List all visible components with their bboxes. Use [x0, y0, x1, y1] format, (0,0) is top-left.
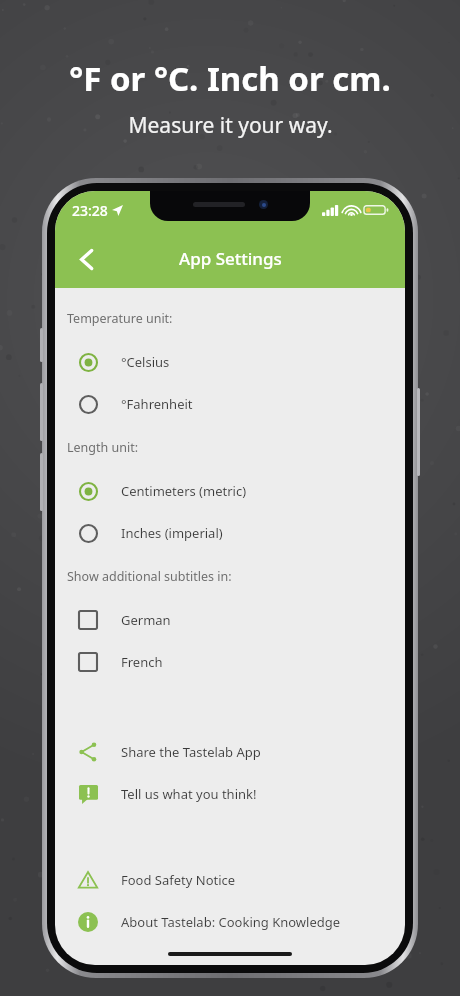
button[interactable]: Inches (imperial) — [55, 512, 405, 554]
button[interactable]: French — [55, 641, 405, 683]
button[interactable]: About Tastelab: Cooking Knowledge — [55, 901, 405, 943]
staticText: °Celsius — [121, 353, 170, 371]
staticText: Tell us what you think! — [121, 785, 257, 803]
staticText: °F or °C. Inch or cm. — [69, 56, 391, 101]
staticText: 23:28 — [72, 201, 108, 220]
button[interactable]: °Fahrenheit — [55, 383, 405, 425]
staticText: About Tastelab: Cooking Knowledge — [121, 913, 341, 931]
button[interactable]: Centimeters (metric) — [55, 470, 405, 512]
staticText: Measure it your way. — [128, 111, 333, 140]
button[interactable]: German — [55, 599, 405, 641]
staticText: Temperature unit: — [67, 310, 173, 327]
button[interactable]: °Celsius — [55, 341, 405, 383]
staticText: Length unit: — [67, 439, 139, 456]
button[interactable]: Food Safety Notice — [55, 859, 405, 901]
staticText: °Fahrenheit — [121, 395, 193, 413]
staticText: French — [121, 653, 163, 671]
staticText: App Settings — [179, 247, 282, 270]
button[interactable]: Back — [63, 235, 111, 283]
staticText: Inches (imperial) — [121, 524, 223, 542]
staticText: Show additional subtitles in: — [67, 568, 232, 585]
staticText: Food Safety Notice — [121, 871, 236, 889]
button[interactable]: Tell us what you think! — [55, 773, 405, 815]
staticText: Share the Tastelab App — [121, 743, 261, 761]
button[interactable]: Share the Tastelab App — [55, 731, 405, 773]
staticText: German — [121, 611, 171, 629]
staticText: Centimeters (metric) — [121, 482, 247, 500]
